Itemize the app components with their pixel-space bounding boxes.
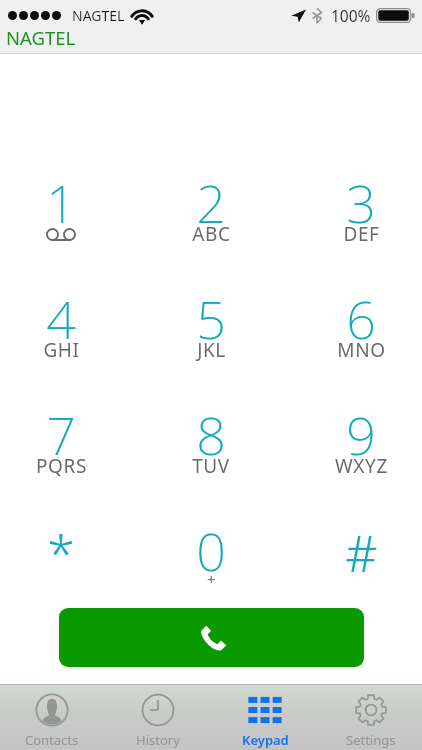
button[interactable]: 4 [6, 283, 116, 399]
staticText: 1 [46, 167, 76, 238]
staticText: MNO [337, 337, 386, 363]
staticText: 2 [196, 167, 226, 238]
staticText: + [207, 569, 216, 589]
staticText: JKL [197, 337, 226, 363]
staticText: 4 [46, 283, 76, 354]
staticText: TUV [192, 453, 230, 479]
button[interactable]: 9 [306, 399, 416, 515]
button[interactable]: 5 [156, 283, 266, 399]
button[interactable]: Contacts [0, 684, 105, 750]
button[interactable]: # [306, 515, 416, 631]
staticText: # [345, 519, 378, 587]
staticText: Settings [346, 731, 396, 749]
button[interactable]: Call [59, 608, 364, 667]
staticText: History [136, 731, 180, 749]
staticText: DEF [343, 221, 380, 247]
staticText: 5 [196, 283, 226, 354]
staticText: 7 [46, 399, 76, 470]
button[interactable]: History [105, 684, 210, 750]
staticText: 3 [346, 167, 376, 238]
button[interactable]: 2 [156, 167, 266, 283]
button[interactable]: 7 [6, 399, 116, 515]
staticText: 8 [196, 399, 226, 470]
button[interactable]: 3 [306, 167, 416, 283]
button[interactable]: Settings [316, 684, 422, 750]
staticText: WXYZ [335, 453, 388, 479]
button[interactable]: Keypad [210, 684, 316, 750]
button[interactable]: 6 [306, 283, 416, 399]
staticText: 0 [196, 515, 226, 586]
staticText: Keypad [242, 731, 289, 749]
staticText: PQRS [36, 453, 87, 479]
staticText: GHI [43, 337, 80, 363]
staticText: Contacts [25, 731, 79, 749]
staticText: NAGTEL [6, 25, 76, 50]
staticText: 9 [346, 399, 376, 470]
button[interactable]: * [6, 515, 116, 631]
button[interactable]: 1 [6, 167, 116, 283]
staticText: NAGTEL [72, 6, 125, 25]
staticText: * [47, 519, 75, 587]
button[interactable]: 8 [156, 399, 266, 515]
staticText: 6 [346, 283, 376, 354]
staticText: 100% [331, 5, 371, 26]
staticText: ABC [192, 221, 231, 247]
button[interactable]: 0 [156, 515, 266, 631]
